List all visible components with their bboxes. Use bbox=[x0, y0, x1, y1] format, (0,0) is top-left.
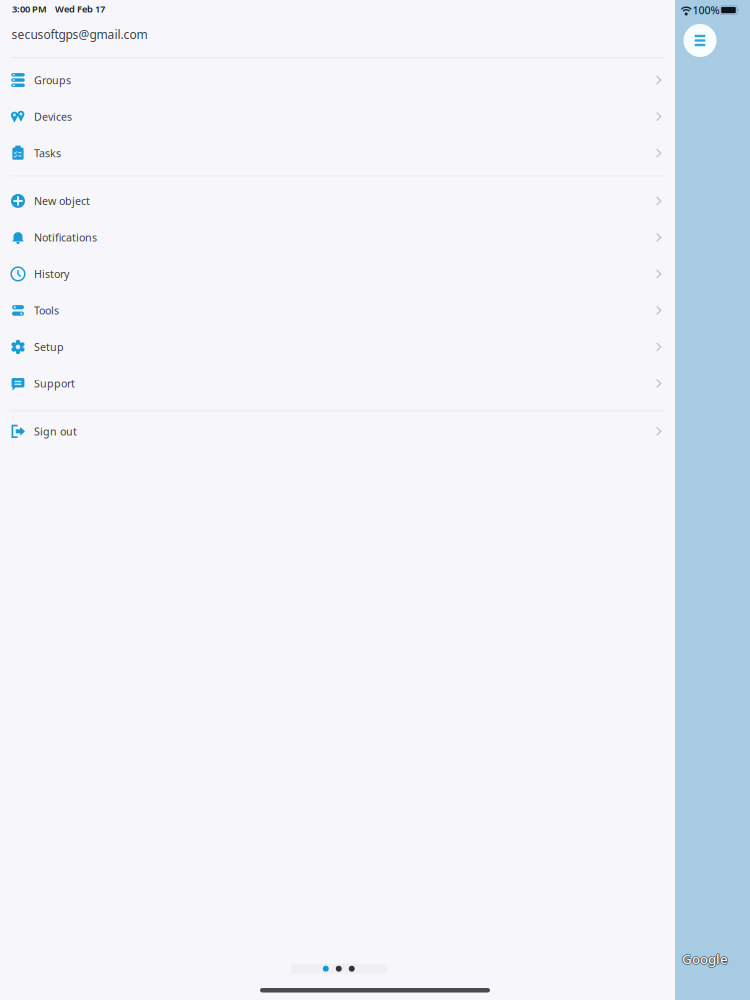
staticText: Google bbox=[682, 950, 728, 968]
staticText: Google bbox=[683, 950, 729, 968]
staticText: Google bbox=[682, 949, 728, 967]
staticText: History bbox=[34, 267, 69, 281]
button[interactable]: History bbox=[0, 256, 675, 292]
staticText: Notifications bbox=[34, 230, 97, 245]
staticText: Tasks bbox=[34, 146, 61, 160]
staticText: Google bbox=[682, 951, 728, 968]
staticText: Tools bbox=[34, 303, 59, 318]
button[interactable]: New object bbox=[0, 183, 675, 219]
staticText: 3:00 PM bbox=[12, 3, 47, 15]
staticText: Groups bbox=[34, 73, 71, 87]
button[interactable]: Sign out bbox=[0, 413, 675, 450]
staticText: 100% bbox=[692, 3, 719, 17]
staticText: Wed Feb 17 bbox=[55, 3, 105, 15]
staticText: secusoftgps@gmail.com bbox=[11, 26, 147, 42]
button[interactable]: Groups bbox=[0, 62, 675, 98]
button[interactable]: Devices bbox=[0, 98, 675, 135]
staticText: Sign out bbox=[34, 424, 77, 438]
staticText: Setup bbox=[34, 340, 64, 354]
button[interactable]: Notifications bbox=[0, 219, 675, 256]
staticText: Google bbox=[681, 950, 727, 968]
staticText: Support bbox=[34, 376, 75, 391]
staticText: New object bbox=[34, 194, 90, 208]
button[interactable]: Tools bbox=[0, 292, 675, 329]
button[interactable]: Menu bbox=[683, 23, 717, 57]
staticText: Devices bbox=[34, 109, 72, 124]
button[interactable]: Setup bbox=[0, 329, 675, 365]
button[interactable]: Support bbox=[0, 365, 675, 402]
button[interactable]: Tasks bbox=[0, 135, 675, 171]
